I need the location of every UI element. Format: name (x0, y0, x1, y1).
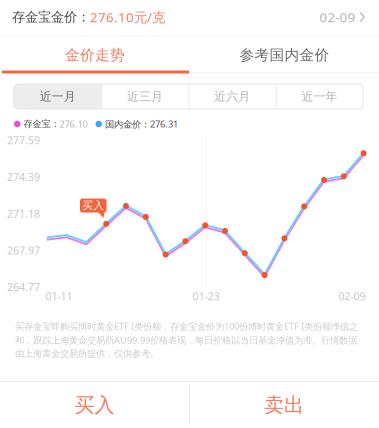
button[interactable]: 近六月 (188, 84, 276, 109)
staticText: 01-11 (45, 289, 72, 303)
staticText: 由上海黄金交易所提供，仅供参考。 (15, 348, 159, 359)
staticText: 02-09 (338, 289, 365, 303)
staticText: 274.39 (7, 170, 40, 184)
staticText: 02-09 (319, 8, 355, 26)
button[interactable]: 金价走势 (0, 36, 190, 73)
staticText: 卖出 (264, 393, 304, 417)
button[interactable]: 存金宝金价： (0, 0, 379, 34)
button[interactable]: 参考国内金价 (190, 36, 379, 73)
staticText: 买入 (74, 393, 114, 417)
staticText: 近一月 (40, 89, 76, 104)
button[interactable]: 近一月 (14, 84, 101, 109)
staticText: 买存金宝即购买博时黄金ETF I类份额，存金宝金价为100份博时黄金ETF I类… (15, 320, 358, 332)
button[interactable]: 近三月 (101, 84, 188, 109)
staticText: 近三月 (127, 89, 163, 104)
staticText: 271.18 (7, 206, 40, 221)
button[interactable]: 买入 (0, 382, 189, 428)
staticText: 近一年 (301, 89, 337, 104)
button[interactable]: 近一年 (276, 84, 363, 109)
staticText: 国内金价：276.31 (105, 118, 178, 130)
button[interactable]: 卖出 (189, 382, 379, 428)
staticText: 264.77 (7, 280, 40, 294)
staticText: 存金宝金价： (12, 9, 90, 25)
staticText: 267.97 (7, 243, 40, 257)
staticText: 金价走势 (65, 46, 125, 64)
staticText: 参考国内金价 (239, 46, 329, 64)
staticText: 01-23 (192, 289, 219, 303)
staticText: 277.59 (7, 133, 40, 147)
staticText: 276.10 (59, 118, 87, 130)
staticText: 买入 (82, 199, 104, 212)
staticText: 和，跟踪上海黄金交易所AU99.99价格表现，每日价格以当日基金净值为准。行情数… (15, 334, 357, 346)
staticText: 近六月 (214, 89, 250, 104)
staticText: 276.10元/克 (90, 8, 165, 26)
staticText: 存金宝： (23, 118, 59, 130)
